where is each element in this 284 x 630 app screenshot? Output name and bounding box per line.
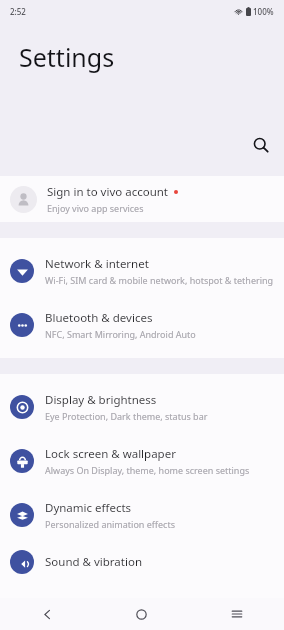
button[interactable]: Sound & vibration xyxy=(0,542,284,582)
button[interactable]: Network & internet xyxy=(0,244,284,298)
button[interactable]: Bluetooth & devices xyxy=(0,298,284,352)
staticText: Enjoy vivo app services xyxy=(47,202,144,214)
staticText: Network & internet xyxy=(45,256,149,272)
button[interactable]: Display & brightness xyxy=(0,380,284,434)
staticText: Lock screen & wallpaper xyxy=(45,446,176,462)
staticText: NFC, Smart Mirroring, Android Auto xyxy=(45,328,196,340)
button[interactable]: Lock screen & wallpaper xyxy=(0,434,284,488)
staticText: Wi-Fi, SIM card & mobile network, hotspo… xyxy=(45,274,274,286)
button[interactable]: Search xyxy=(242,126,280,164)
staticText: 100% xyxy=(253,6,274,17)
staticText: Dynamic effects xyxy=(45,500,132,516)
staticText: Settings xyxy=(19,40,115,74)
staticText: Eye Protection, Dark theme, status bar xyxy=(45,410,208,422)
button[interactable]: Dynamic effects xyxy=(0,488,284,542)
staticText: 2:52 xyxy=(10,6,26,17)
button[interactable]: Home xyxy=(94,598,189,630)
button[interactable]: Back xyxy=(0,598,94,630)
staticText: Sound & vibration xyxy=(45,554,142,570)
button[interactable]: Recents xyxy=(189,598,284,630)
staticText: Bluetooth & devices xyxy=(45,310,153,326)
button[interactable]: Sign in to vivo account xyxy=(0,176,284,222)
staticText: Display & brightness xyxy=(45,392,157,408)
staticText: Always On Display, theme, home screen se… xyxy=(45,464,250,476)
staticText: Personalized animation effects xyxy=(45,518,175,530)
staticText: Sign in to vivo account xyxy=(47,184,169,200)
